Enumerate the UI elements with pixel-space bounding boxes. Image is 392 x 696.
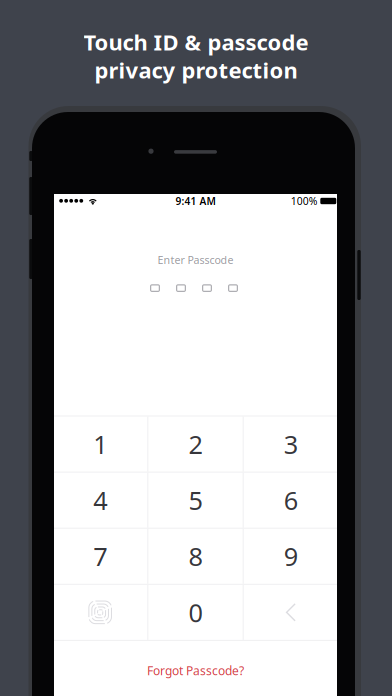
- staticText: 9:41 AM: [175, 194, 215, 208]
- staticText: 3: [284, 427, 298, 461]
- staticText: 1: [93, 427, 107, 461]
- button[interactable]: 3: [244, 416, 338, 472]
- staticText: Forgot Passcode?: [147, 662, 244, 679]
- button[interactable]: 5: [148, 473, 243, 528]
- staticText: 4: [93, 483, 107, 517]
- staticText: Touch ID & passcode: [83, 27, 308, 57]
- staticText: 100%: [291, 194, 318, 208]
- staticText: 2: [188, 427, 202, 461]
- button[interactable]: 2: [148, 416, 243, 472]
- button[interactable]: 9: [244, 529, 338, 584]
- staticText: 8: [188, 539, 202, 573]
- staticText: 7: [93, 539, 107, 573]
- staticText: 6: [284, 483, 298, 517]
- button[interactable]: Forgot Passcode?: [142, 657, 249, 684]
- staticText: privacy protection: [94, 55, 297, 85]
- button[interactable]: 7: [53, 529, 147, 584]
- button[interactable]: 1: [53, 416, 147, 472]
- button[interactable]: 4: [53, 473, 147, 528]
- button[interactable]: Delete: [244, 585, 338, 640]
- staticText: 9: [284, 539, 298, 573]
- button[interactable]: 0: [148, 585, 243, 640]
- button[interactable]: Touch ID: [53, 585, 147, 640]
- staticText: Enter Passcode: [157, 252, 233, 267]
- staticText: 0: [188, 595, 202, 630]
- staticText: 5: [188, 483, 202, 517]
- button[interactable]: 8: [148, 529, 243, 584]
- button[interactable]: 6: [244, 473, 338, 528]
